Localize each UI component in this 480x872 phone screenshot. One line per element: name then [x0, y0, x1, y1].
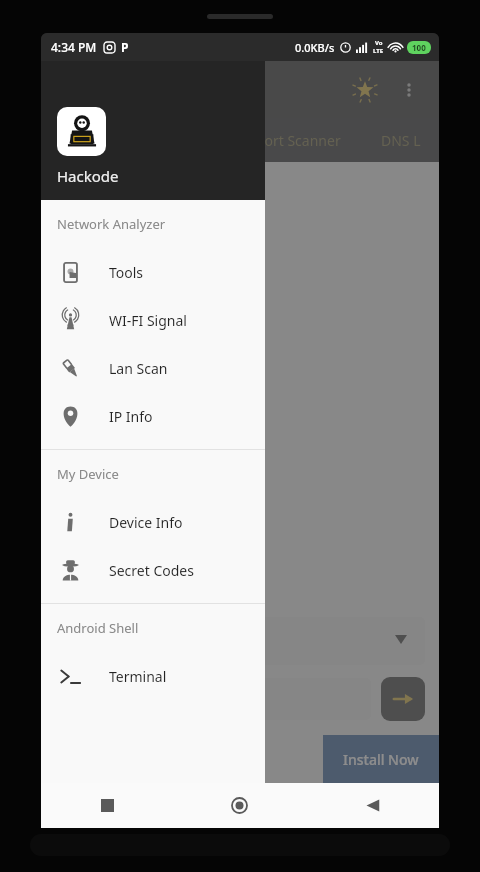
staticText: Hackode: [57, 166, 119, 186]
button[interactable]: Back: [306, 783, 439, 828]
staticText: DNS L: [381, 131, 421, 150]
button[interactable]: Recents: [41, 783, 173, 828]
staticText: P: [121, 39, 129, 55]
staticText: WI-FI Signal: [109, 311, 187, 330]
staticText: Terminal: [109, 667, 167, 686]
staticText: 0.0KB/s: [295, 40, 335, 55]
staticText: Secret Codes: [109, 561, 194, 580]
button[interactable]: Secret Codes: [41, 546, 265, 594]
staticText: 100: [412, 42, 426, 53]
staticText: Vo: [375, 39, 383, 47]
staticText: Tools: [109, 263, 144, 282]
button[interactable]: Lan Scan: [41, 344, 265, 392]
button[interactable]: Port Scanner: [252, 131, 345, 150]
button[interactable]: Favorites: [345, 70, 385, 110]
button[interactable]: [55, 617, 425, 665]
staticText: Port Scanner: [256, 131, 341, 150]
button[interactable]: Home: [173, 783, 306, 828]
button[interactable]: Go: [381, 677, 425, 721]
button[interactable]: Device Info: [41, 498, 265, 546]
button[interactable]: More options: [391, 72, 427, 108]
staticText: Device Info: [109, 513, 183, 532]
button[interactable]: IP Info: [41, 392, 265, 440]
staticText: Network Analyzer: [57, 215, 166, 233]
staticText: 4:34 PM: [51, 39, 97, 55]
staticText: Android Shell: [57, 619, 139, 637]
button[interactable]: Tools: [41, 248, 265, 296]
button[interactable]: Terminal: [41, 652, 265, 700]
staticText: Lan Scan: [109, 359, 168, 378]
staticText: LTE: [373, 47, 384, 55]
staticText: Install Now: [343, 750, 419, 769]
button[interactable]: [55, 678, 371, 720]
staticText: My Device: [57, 465, 119, 483]
button[interactable]: Install Now: [323, 735, 439, 783]
button[interactable]: DNS L: [377, 131, 425, 150]
button[interactable]: WI-FI Signal: [41, 296, 265, 344]
staticText: IP Info: [109, 407, 153, 426]
